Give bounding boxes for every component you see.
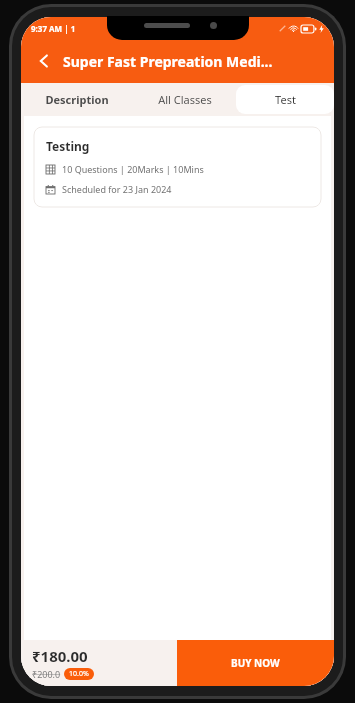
button[interactable]: Back — [29, 46, 59, 76]
staticText: ₹200.0 — [32, 668, 61, 680]
staticText: All Classes — [158, 92, 212, 107]
staticText: Test — [275, 92, 296, 107]
staticText: 10 Questions | 20Marks | 10Mins — [62, 163, 204, 175]
staticText: ₹180.00 — [32, 646, 88, 666]
button[interactable]: Description — [21, 85, 133, 114]
staticText: Description — [45, 92, 109, 107]
button[interactable]: Test — [236, 85, 334, 114]
staticText: 10.0% — [69, 669, 89, 679]
button[interactable]: All Classes — [133, 85, 236, 114]
staticText: 9:37 AM | 1 — [31, 23, 76, 34]
button[interactable]: Testing — [33, 126, 322, 208]
staticText: Scheduled for 23 Jan 2024 — [62, 183, 172, 195]
staticText: BUY NOW — [231, 656, 280, 670]
button[interactable]: BUY NOW — [177, 640, 334, 686]
staticText: Super Fast Prepreation Medi... — [63, 52, 273, 71]
staticText: Testing — [46, 138, 90, 154]
